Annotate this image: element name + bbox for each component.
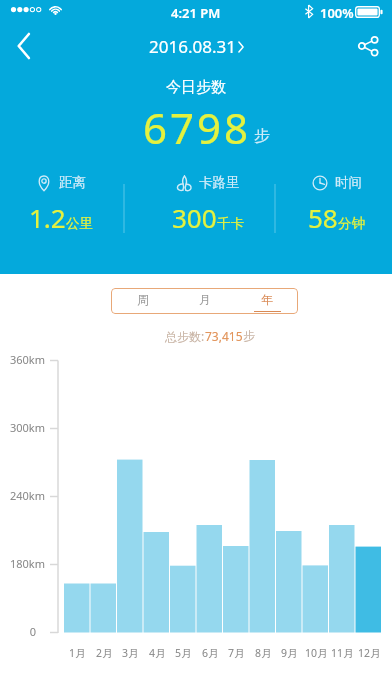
staticText: 7月 (228, 646, 245, 660)
staticText: 今日步数 (166, 78, 226, 97)
staticText: 10月 (305, 646, 328, 660)
staticText: 5月 (175, 646, 192, 660)
staticText: 300km (9, 420, 45, 435)
staticText: 千卡 (217, 215, 244, 232)
button[interactable]: 月 (174, 288, 236, 314)
staticText: 4月 (149, 646, 166, 660)
staticText: 周 (137, 292, 149, 307)
staticText: 12月 (358, 646, 381, 660)
staticText: 58 (308, 200, 338, 235)
staticText: 分钟 (338, 215, 365, 232)
staticText: 公里 (66, 215, 93, 232)
staticText: 步 (243, 328, 255, 343)
button[interactable]: 周 (111, 288, 174, 314)
staticText: 时间 (335, 174, 362, 191)
button[interactable]: Share (344, 22, 392, 70)
button[interactable]: 距离 (0, 174, 123, 235)
staticText: 300 (172, 200, 217, 235)
button[interactable]: 时间 (278, 174, 392, 235)
staticText: 240km (9, 488, 45, 503)
button[interactable]: 2016.08.31 (149, 35, 244, 58)
staticText: 4:21 PM (171, 4, 221, 22)
staticText: 360km (9, 352, 45, 367)
staticText: 9月 (281, 646, 298, 660)
staticText: 距离 (59, 174, 86, 191)
staticText: 2月 (96, 646, 113, 660)
staticText: 3月 (122, 646, 139, 660)
staticText: 年 (261, 292, 273, 307)
staticText: 11月 (331, 646, 354, 660)
staticText: 8月 (255, 646, 272, 660)
staticText: 6798 (143, 99, 252, 156)
button[interactable]: 卡路里 (132, 174, 283, 235)
staticText: 2016.08.31 (149, 35, 236, 58)
staticText: 1月 (69, 646, 86, 660)
staticText: 卡路里 (199, 174, 240, 191)
staticText: 0 (29, 624, 36, 639)
staticText: 步 (254, 126, 270, 146)
button[interactable]: 年 (236, 288, 298, 314)
staticText: 100% (320, 4, 354, 22)
staticText: 6月 (202, 646, 219, 660)
staticText: 73,415 (205, 328, 243, 344)
staticText: 月 (199, 292, 211, 307)
staticText: 1.2 (29, 200, 66, 235)
staticText: 180km (9, 556, 45, 571)
staticText: 总步数: (165, 328, 205, 344)
button[interactable]: Back (0, 22, 48, 70)
